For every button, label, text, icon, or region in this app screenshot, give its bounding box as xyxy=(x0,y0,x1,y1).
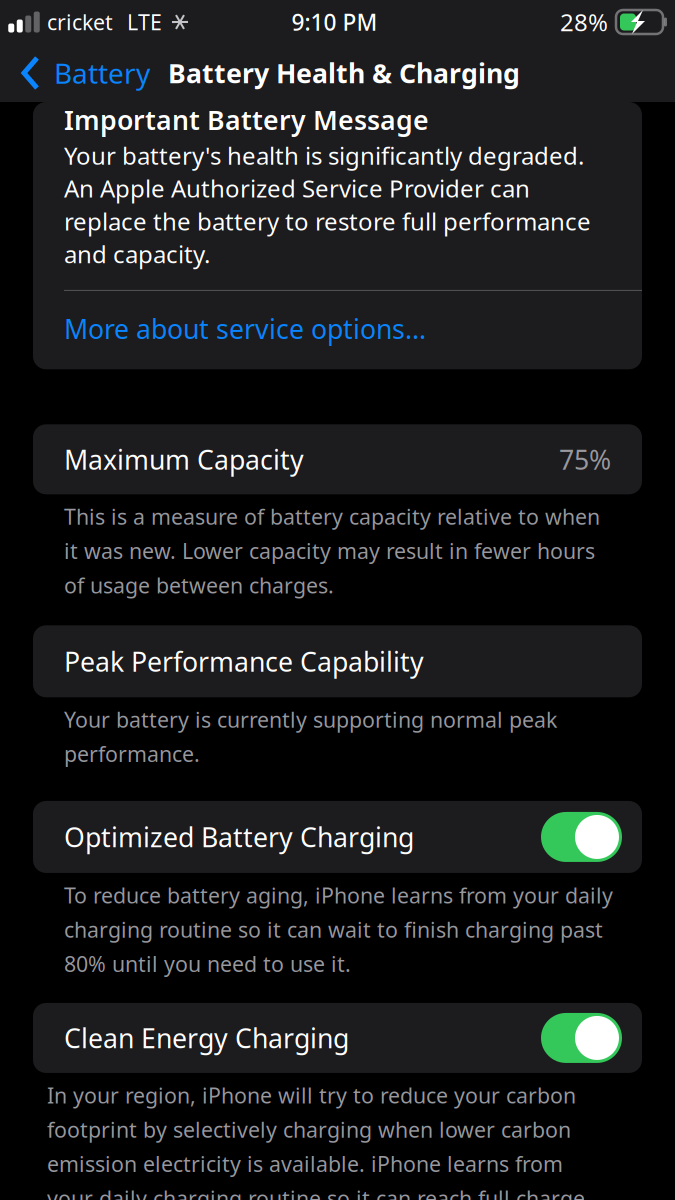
staticText: Maximum Capacity xyxy=(64,442,304,477)
staticText: cricket xyxy=(47,8,113,36)
staticText: Your battery is currently supporting nor… xyxy=(64,705,557,768)
staticText: Clean Energy Charging xyxy=(64,1020,349,1056)
staticText: Battery Health & Charging xyxy=(168,55,520,91)
staticText: 75% xyxy=(559,442,611,477)
staticText: To reduce battery aging, iPhone learns f… xyxy=(64,881,613,978)
staticText: 9:10 PM xyxy=(291,7,377,37)
staticText: In your region, iPhone will try to reduc… xyxy=(47,1081,585,1200)
staticText: Your battery's health is significantly d… xyxy=(64,139,591,270)
staticText: More about service options... xyxy=(64,311,426,346)
button[interactable]: Peak Performance Capability xyxy=(0,625,675,697)
button[interactable]: Battery xyxy=(0,44,158,102)
button[interactable]: More about service options... xyxy=(64,291,616,346)
staticText: Battery xyxy=(54,54,150,92)
staticText: Important Battery Message xyxy=(64,102,429,137)
button[interactable]: Toggle xyxy=(541,1013,622,1063)
button[interactable]: Toggle xyxy=(541,812,622,862)
staticText: Optimized Battery Charging xyxy=(64,819,414,855)
staticText: Peak Performance Capability xyxy=(64,644,424,679)
staticText: LTE xyxy=(127,8,162,36)
staticText: 28% xyxy=(560,6,608,38)
staticText: This is a measure of battery capacity re… xyxy=(64,502,600,599)
